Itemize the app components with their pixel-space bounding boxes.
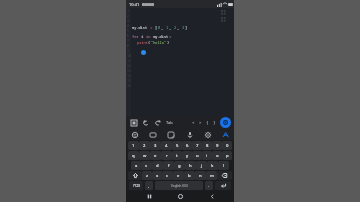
staticText: >: [199, 120, 202, 126]
staticText: }: [213, 120, 216, 126]
button[interactable]: m: [206, 171, 217, 180]
staticText: n: [199, 173, 202, 179]
button[interactable]: Shift: [128, 171, 142, 180]
button[interactable]: Emoji: [130, 130, 139, 139]
staticText: 6: [186, 143, 189, 149]
staticText: Tab: [166, 120, 173, 125]
button[interactable]: 6: [182, 141, 192, 150]
staticText: 16: [127, 84, 131, 89]
button[interactable]: >: [197, 119, 204, 126]
button[interactable]: c: [162, 171, 173, 180]
staticText: o: [216, 153, 219, 159]
button[interactable]: p: [222, 151, 232, 160]
button[interactable]: Sticker: [166, 130, 175, 139]
staticText: s: [145, 163, 148, 169]
button[interactable]: <: [190, 119, 197, 126]
button[interactable]: 8: [202, 141, 212, 150]
staticText: 1: [132, 143, 135, 149]
button[interactable]: k: [207, 161, 218, 170]
button[interactable]: 2: [139, 141, 150, 150]
button[interactable]: Translate: [221, 130, 230, 139]
button[interactable]: 7: [192, 141, 202, 150]
staticText: f: [168, 163, 170, 169]
staticText: v: [177, 173, 180, 179]
staticText: ?123: [133, 184, 140, 188]
button[interactable]: Undo: [141, 118, 150, 127]
button[interactable]: g: [174, 161, 185, 170]
button[interactable]: Settings: [203, 130, 212, 139]
button[interactable]: y: [182, 151, 192, 160]
button[interactable]: q: [128, 151, 139, 160]
staticText: (: [148, 40, 151, 45]
staticText: 6: [127, 34, 129, 39]
staticText: u: [196, 153, 199, 159]
staticText: 3: [127, 19, 129, 24]
staticText: 0: [226, 143, 229, 149]
staticText: c: [166, 173, 169, 179]
button[interactable]: 4: [161, 141, 172, 150]
button[interactable]: n: [195, 171, 206, 180]
staticText: d: [156, 163, 159, 169]
button[interactable]: b: [184, 171, 195, 180]
button[interactable]: u: [192, 151, 202, 160]
staticText: .: [208, 183, 210, 188]
button[interactable]: ?123: [129, 181, 143, 190]
button[interactable]: j: [196, 161, 207, 170]
staticText: 11: [127, 59, 131, 64]
staticText: 7: [196, 143, 199, 149]
staticText: 10:41: [129, 2, 140, 7]
button[interactable]: d: [152, 161, 163, 170]
button[interactable]: 0: [222, 141, 232, 150]
staticText: =: [148, 25, 155, 30]
staticText: 4: [127, 24, 129, 29]
button[interactable]: 1: [128, 141, 139, 150]
button[interactable]: .: [205, 181, 213, 190]
button[interactable]: 3: [150, 141, 161, 150]
button[interactable]: x: [152, 171, 162, 180]
staticText: q: [132, 153, 135, 159]
button[interactable]: Backspace: [217, 171, 232, 180]
button[interactable]: t: [172, 151, 182, 160]
button[interactable]: z: [142, 171, 152, 180]
button[interactable]: English (US): [155, 181, 203, 190]
button[interactable]: s: [141, 161, 152, 170]
button[interactable]: }: [211, 119, 218, 126]
button[interactable]: r: [161, 151, 172, 160]
staticText: 9: [216, 143, 219, 149]
button[interactable]: Recents: [140, 191, 158, 202]
staticText: 12: [127, 64, 131, 69]
button[interactable]: h: [185, 161, 196, 170]
staticText: 0: [158, 25, 161, 30]
staticText: my.dist: [151, 34, 169, 39]
button[interactable]: l: [218, 161, 229, 170]
button[interactable]: Home: [171, 191, 189, 202]
button[interactable]: Redo: [153, 118, 162, 127]
staticText: 4: [165, 143, 168, 149]
button[interactable]: Voice input: [185, 130, 194, 139]
staticText: ,: [169, 25, 174, 30]
staticText: 10: [127, 54, 131, 59]
staticText: l: [223, 163, 225, 169]
button[interactable]: Enter: [215, 181, 231, 190]
button[interactable]: w: [139, 151, 150, 160]
button[interactable]: f: [163, 161, 174, 170]
button[interactable]: Run: [220, 117, 231, 128]
staticText: j: [201, 163, 203, 169]
button[interactable]: Select all: [129, 118, 138, 127]
button[interactable]: 9: [212, 141, 222, 150]
button[interactable]: a: [131, 161, 141, 170]
staticText: 9: [127, 49, 129, 54]
button[interactable]: 5: [172, 141, 182, 150]
staticText: 14: [127, 74, 131, 79]
button[interactable]: ,: [145, 181, 153, 190]
button[interactable]: {: [204, 119, 211, 126]
button[interactable]: GIF: [148, 130, 157, 139]
button[interactable]: Back: [203, 191, 221, 202]
button[interactable]: Tab: [165, 120, 174, 125]
staticText: i: [139, 34, 146, 39]
button[interactable]: i: [202, 151, 212, 160]
button[interactable]: v: [173, 171, 184, 180]
button[interactable]: e: [150, 151, 161, 160]
staticText: [: [155, 25, 158, 30]
button[interactable]: o: [212, 151, 222, 160]
